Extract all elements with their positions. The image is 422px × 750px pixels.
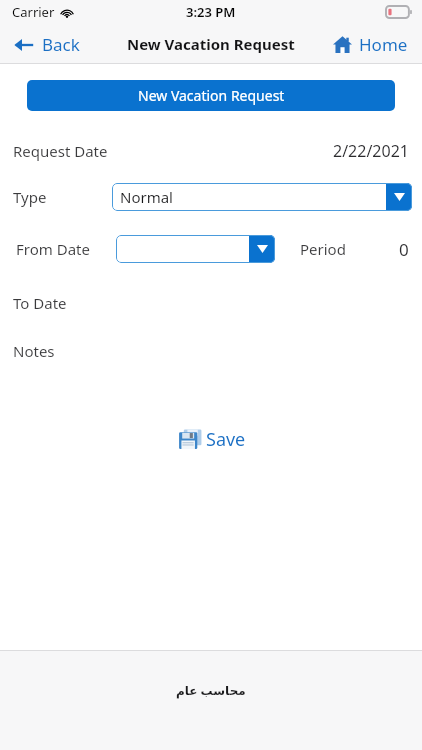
button[interactable]: New Vacation Request	[27, 80, 395, 111]
staticText: Save	[206, 427, 246, 452]
button[interactable]: Normal	[112, 183, 412, 211]
button[interactable]: Save	[169, 423, 254, 456]
staticText: New Vacation Request	[127, 34, 295, 54]
other: Home	[333, 36, 352, 53]
staticText: Home	[359, 33, 408, 56]
other: Back	[14, 37, 34, 53]
button[interactable]	[116, 235, 275, 263]
button[interactable]: Home	[321, 27, 422, 62]
staticText: Request Date	[13, 141, 108, 161]
staticText: New Vacation Request	[138, 86, 285, 105]
staticText: From Date	[16, 239, 90, 259]
staticText: Type	[13, 187, 47, 207]
button[interactable]: Back	[0, 27, 92, 62]
staticText: Back	[42, 33, 80, 56]
staticText: Normal	[120, 187, 173, 207]
staticText: Period	[300, 239, 346, 259]
staticText: محاسب عام	[176, 682, 246, 698]
staticText: Notes	[13, 341, 55, 361]
staticText: 3:23 PM	[186, 3, 236, 21]
staticText: To Date	[13, 293, 67, 313]
other: Save	[177, 428, 203, 452]
staticText: Carrier	[12, 3, 55, 21]
staticText: 2/22/2021	[333, 140, 409, 162]
staticText: 0	[399, 238, 409, 261]
